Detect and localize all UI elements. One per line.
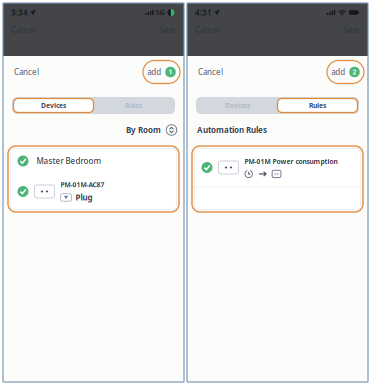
- button[interactable]: Devices: [13, 98, 93, 112]
- button[interactable]: Rules: [277, 98, 357, 112]
- button[interactable]: By Room: [126, 119, 184, 140]
- button[interactable]: Save: [335, 21, 360, 38]
- staticText: Cancel: [14, 67, 39, 77]
- staticText: Rules: [309, 101, 326, 110]
- button[interactable]: Cancel: [198, 62, 233, 82]
- staticText: Cancel: [198, 67, 223, 77]
- button[interactable]: Cancel: [11, 21, 44, 38]
- button[interactable]: Devices: [197, 98, 277, 112]
- staticText: Devices: [225, 101, 250, 110]
- button[interactable]: Save: [151, 21, 176, 38]
- staticText: 2: [352, 68, 356, 76]
- button[interactable]: add: [327, 60, 364, 83]
- staticText: Devices: [41, 101, 66, 110]
- staticText: 4:31: [195, 7, 212, 18]
- staticText: Save: [343, 24, 360, 35]
- staticText: By Room: [126, 125, 161, 135]
- staticText: Automation Rules: [197, 125, 267, 135]
- staticText: Cancel: [11, 24, 36, 35]
- button[interactable]: Cancel: [195, 21, 228, 38]
- button[interactable]: Cancel: [14, 62, 49, 82]
- staticText: add: [331, 67, 345, 77]
- staticText: PM-01M Power consumption: [244, 157, 337, 166]
- staticText: 5G: [156, 8, 165, 17]
- button[interactable]: add: [143, 60, 180, 83]
- staticText: 1: [168, 68, 172, 76]
- staticText: Plug: [75, 192, 92, 203]
- button[interactable]: Rules: [93, 98, 173, 112]
- staticText: Rules: [125, 101, 142, 110]
- staticText: Master Bedroom: [36, 156, 101, 166]
- staticText: 3:34: [11, 7, 28, 18]
- staticText: Cancel: [195, 24, 220, 35]
- staticText: PM-01M-AC87: [60, 180, 104, 189]
- staticText: add: [147, 67, 161, 77]
- staticText: Save: [159, 24, 176, 35]
